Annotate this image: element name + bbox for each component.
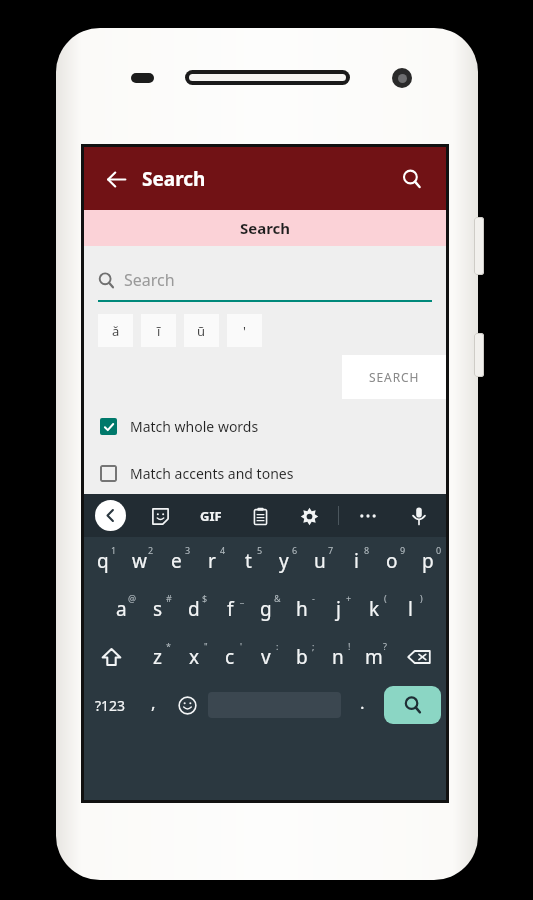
button[interactable]: k <box>356 585 392 633</box>
button[interactable]: d <box>176 585 212 633</box>
button[interactable]: Stickers <box>145 501 175 531</box>
button[interactable]: SEARCH <box>342 355 446 399</box>
staticText: ' <box>240 640 243 652</box>
button[interactable]: p <box>410 537 446 585</box>
staticText: a <box>116 596 127 622</box>
staticText: Search <box>240 218 291 238</box>
button[interactable]: j <box>320 585 356 633</box>
button[interactable]: Match whole words <box>84 413 446 439</box>
button[interactable]: c <box>212 633 248 681</box>
button[interactable]: ' <box>227 314 262 347</box>
button[interactable]: a <box>103 585 140 633</box>
button[interactable]: w <box>121 537 158 585</box>
button[interactable]: ĩ <box>141 314 176 347</box>
button[interactable]: . <box>345 681 379 729</box>
staticText: m <box>365 644 383 670</box>
button[interactable]: z <box>139 633 176 681</box>
button[interactable]: e <box>158 537 194 585</box>
staticText: 6 <box>292 544 298 556</box>
button[interactable]: g <box>248 585 284 633</box>
staticText: ? <box>383 640 387 652</box>
button[interactable]: l <box>392 585 428 633</box>
button[interactable]: o <box>374 537 410 585</box>
button[interactable]: Backspace <box>392 633 446 681</box>
button[interactable]: Shift <box>84 633 139 681</box>
button[interactable]: Search <box>384 686 441 724</box>
staticText: h <box>296 596 308 622</box>
button[interactable]: Search <box>84 210 446 246</box>
staticText: @ <box>128 592 137 604</box>
button[interactable]: , <box>137 681 170 729</box>
button[interactable]: Search <box>392 159 432 199</box>
staticText: 0 <box>436 544 442 556</box>
staticText: - <box>312 592 315 604</box>
button[interactable]: y <box>266 537 302 585</box>
staticText: l <box>408 596 413 622</box>
button[interactable]: m <box>356 633 392 681</box>
button[interactable]: Search <box>98 269 432 302</box>
staticText: s <box>153 596 163 622</box>
button[interactable]: i <box>338 537 374 585</box>
staticText: _ <box>240 592 244 604</box>
staticText: j <box>336 596 341 622</box>
staticText: u <box>314 548 326 574</box>
button[interactable]: u <box>302 537 338 585</box>
staticText: Search <box>142 166 206 192</box>
button[interactable]: Close toolbar <box>95 500 126 531</box>
staticText: 4 <box>220 544 226 556</box>
button[interactable]: Back <box>96 159 136 199</box>
staticText: ' <box>243 322 246 340</box>
staticText: Match whole words <box>130 417 259 436</box>
button[interactable]: q <box>84 537 121 585</box>
staticText: d <box>188 596 200 622</box>
button[interactable]: b <box>284 633 320 681</box>
button[interactable]: r <box>194 537 230 585</box>
button[interactable]: f <box>212 585 248 633</box>
staticText: n <box>332 644 344 670</box>
staticText: * <box>166 640 171 652</box>
staticText: 3 <box>185 544 191 556</box>
button[interactable]: h <box>284 585 320 633</box>
button[interactable]: n <box>320 633 356 681</box>
staticText: 7 <box>328 544 334 556</box>
staticText: f <box>227 596 234 622</box>
button[interactable]: ă <box>98 314 133 347</box>
staticText: e <box>171 548 182 574</box>
button[interactable]: Clipboard <box>245 501 275 531</box>
staticText: q <box>97 548 109 574</box>
staticText: " <box>204 640 208 652</box>
button[interactable]: Match accents and tones <box>84 460 446 486</box>
staticText: c <box>225 644 235 670</box>
staticText: 2 <box>148 544 154 556</box>
staticText: ?123 <box>95 696 126 715</box>
staticText: 5 <box>257 544 263 556</box>
staticText: ĩ <box>157 322 161 340</box>
button[interactable]: ũ <box>184 314 219 347</box>
staticText: x <box>189 644 200 670</box>
staticText: # <box>166 592 172 604</box>
staticText: 1 <box>111 544 117 556</box>
button[interactable]: s <box>140 585 176 633</box>
button[interactable]: v <box>248 633 284 681</box>
button[interactable]: x <box>176 633 212 681</box>
button[interactable]: Emoji <box>170 681 204 729</box>
staticText: ) <box>420 592 423 604</box>
button[interactable]: More options <box>353 501 383 531</box>
staticText: SEARCH <box>369 369 420 385</box>
button[interactable]: Voice input <box>404 501 434 531</box>
staticText: b <box>296 644 308 670</box>
staticText: 9 <box>400 544 406 556</box>
staticText: ! <box>348 640 351 652</box>
staticText: ( <box>384 592 387 604</box>
staticText: i <box>354 548 359 574</box>
staticText: + <box>346 592 352 604</box>
staticText: o <box>386 548 398 574</box>
button[interactable]: Settings <box>294 501 324 531</box>
staticText: g <box>260 596 272 622</box>
staticText: t <box>245 548 252 574</box>
staticText: y <box>279 548 289 574</box>
button[interactable]: GIF <box>194 499 228 533</box>
button[interactable]: ?123 <box>84 681 137 729</box>
button[interactable]: t <box>230 537 266 585</box>
